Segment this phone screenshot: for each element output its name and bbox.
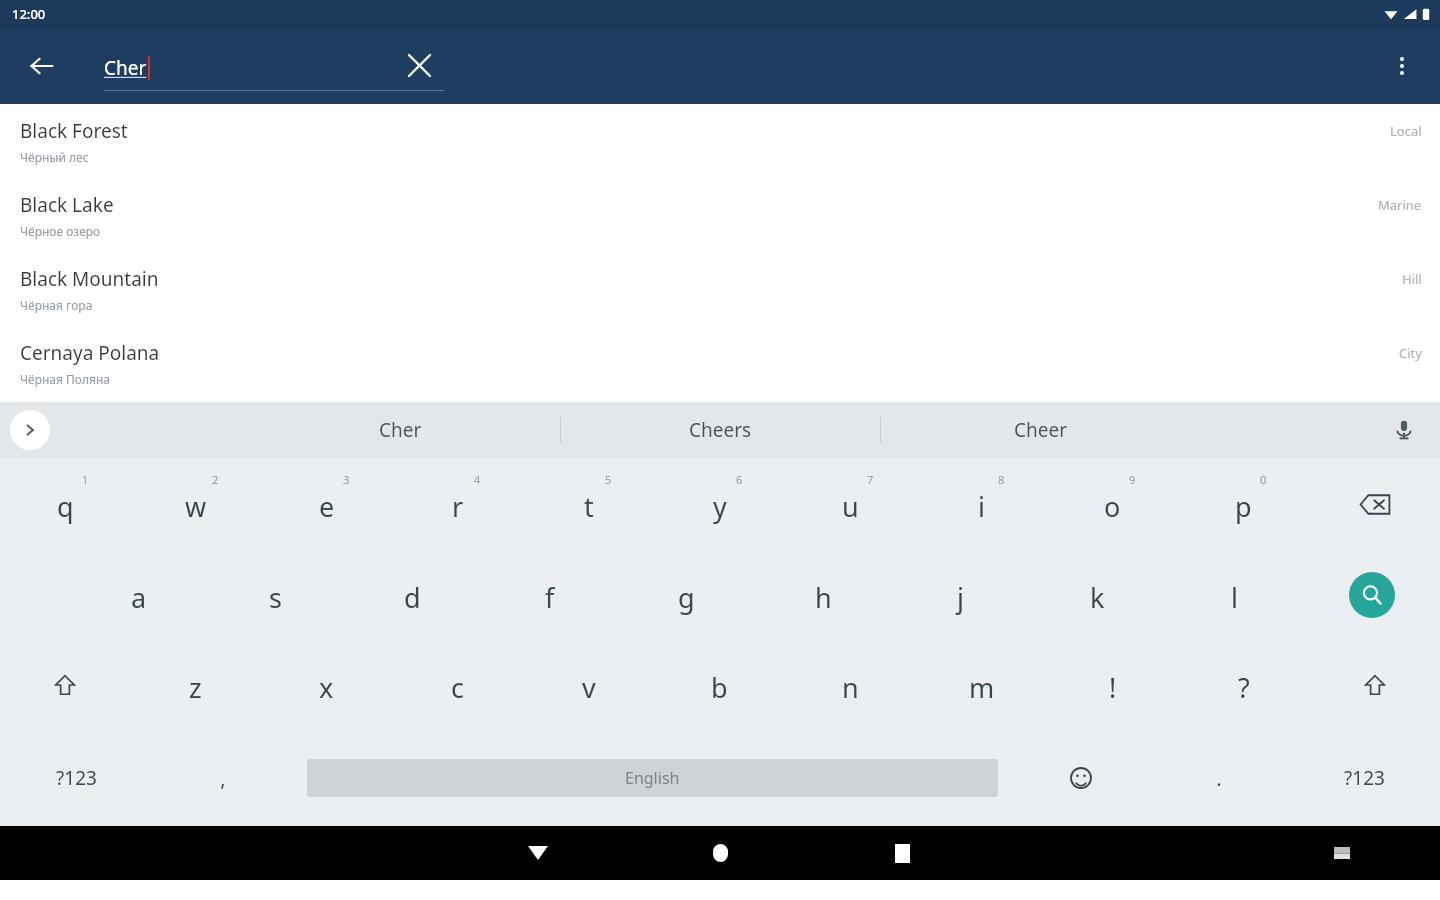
button[interactable]: i <box>916 458 1047 550</box>
button[interactable]: Black Forest <box>0 104 1440 178</box>
staticText: Black Mountain <box>20 266 159 292</box>
button[interactable]: ! <box>1047 640 1178 730</box>
staticText: 9 <box>1129 472 1136 487</box>
button[interactable]: , <box>153 730 292 826</box>
staticText: 12:00 <box>12 5 46 23</box>
staticText: Marine <box>1378 196 1422 214</box>
button[interactable]: Cheers <box>561 402 880 458</box>
button[interactable]: n <box>785 640 916 730</box>
button[interactable]: ?123 <box>1288 730 1440 826</box>
staticText: Cernaya Polana <box>20 340 160 366</box>
button[interactable]: Cher <box>240 402 560 458</box>
button[interactable]: m <box>916 640 1047 730</box>
staticText: v <box>582 669 596 706</box>
staticText: . <box>1216 765 1222 792</box>
button[interactable]: Cheer <box>881 402 1200 458</box>
staticText: Black Forest <box>20 118 128 144</box>
button[interactable]: Search <box>1349 572 1395 618</box>
button[interactable]: s <box>207 550 344 640</box>
staticText: e <box>319 488 335 525</box>
button[interactable]: t <box>523 458 654 550</box>
staticText: 8 <box>998 472 1005 487</box>
button[interactable]: q <box>0 458 130 550</box>
button[interactable]: Black Mountain <box>0 252 1440 326</box>
staticText: t <box>584 488 594 525</box>
button[interactable]: Black Lake <box>0 178 1440 252</box>
button[interactable]: ?123 <box>0 730 153 826</box>
button[interactable]: v <box>523 640 654 730</box>
button[interactable]: g <box>618 550 755 640</box>
staticText: 7 <box>867 472 874 487</box>
staticText: ? <box>1238 669 1250 706</box>
staticText: r <box>452 488 464 525</box>
button[interactable]: o <box>1047 458 1178 550</box>
staticText: h <box>815 579 832 616</box>
staticText: Чёрная гора <box>20 297 93 313</box>
staticText: Cheers <box>689 417 752 443</box>
button[interactable]: Recent apps <box>880 831 924 875</box>
button[interactable]: d <box>344 550 481 640</box>
button[interactable]: Cher <box>104 45 444 91</box>
button[interactable]: . <box>1150 730 1288 826</box>
button[interactable]: l <box>1166 550 1303 640</box>
button[interactable]: y <box>654 458 785 550</box>
button[interactable]: a <box>70 550 207 640</box>
button[interactable]: c <box>392 640 523 730</box>
button[interactable]: w <box>130 458 261 550</box>
button[interactable]: Hide keyboard <box>516 831 560 875</box>
staticText: k <box>1090 579 1105 616</box>
staticText: 1 <box>82 472 89 487</box>
staticText: 4 <box>474 472 481 487</box>
staticText: p <box>1235 488 1252 525</box>
staticText: City <box>1399 344 1422 362</box>
staticText: 2 <box>212 472 219 487</box>
staticText: c <box>451 669 464 706</box>
staticText: Чёрная Поляна <box>20 371 111 387</box>
staticText: ?123 <box>56 765 97 791</box>
staticText: 5 <box>605 472 612 487</box>
button[interactable]: Shift <box>0 640 130 730</box>
button[interactable]: f <box>481 550 618 640</box>
staticText: l <box>1231 579 1238 616</box>
button[interactable]: Switch keyboard <box>1322 833 1362 873</box>
button[interactable]: Shift <box>1309 640 1440 730</box>
button[interactable]: Clear text <box>395 41 443 89</box>
button[interactable]: k <box>1029 550 1166 640</box>
staticText: 0 <box>1260 472 1267 487</box>
button[interactable]: Emoji <box>1012 730 1150 826</box>
staticText: f <box>545 579 555 616</box>
button[interactable]: z <box>130 640 261 730</box>
button[interactable]: h <box>755 550 892 640</box>
staticText: 6 <box>736 472 743 487</box>
button[interactable]: Cernaya Polana <box>0 326 1440 400</box>
button[interactable]: Voice input <box>1382 408 1426 452</box>
button[interactable]: Expand suggestions <box>10 410 50 450</box>
button[interactable]: u <box>785 458 916 550</box>
staticText: a <box>131 579 147 616</box>
staticText: u <box>842 488 859 525</box>
button[interactable]: p <box>1178 458 1309 550</box>
button[interactable]: More options <box>1378 42 1426 90</box>
staticText: , <box>220 765 226 792</box>
button[interactable]: Back <box>18 42 66 90</box>
staticText: Black Lake <box>20 192 114 218</box>
staticText: w <box>185 488 207 525</box>
staticText: b <box>711 669 728 706</box>
button[interactable]: b <box>654 640 785 730</box>
button[interactable]: x <box>261 640 392 730</box>
button[interactable]: English <box>307 759 998 797</box>
staticText: ?123 <box>1344 765 1385 791</box>
button[interactable]: ? <box>1178 640 1309 730</box>
button[interactable]: Home <box>698 831 742 875</box>
staticText: s <box>269 579 282 616</box>
staticText: j <box>957 579 964 616</box>
button[interactable]: Backspace <box>1309 458 1440 550</box>
button[interactable]: j <box>892 550 1029 640</box>
button[interactable]: r <box>392 458 523 550</box>
staticText: n <box>842 669 859 706</box>
button[interactable]: e <box>261 458 392 550</box>
staticText: 3 <box>343 472 350 487</box>
staticText: Чёрное озеро <box>20 223 101 239</box>
